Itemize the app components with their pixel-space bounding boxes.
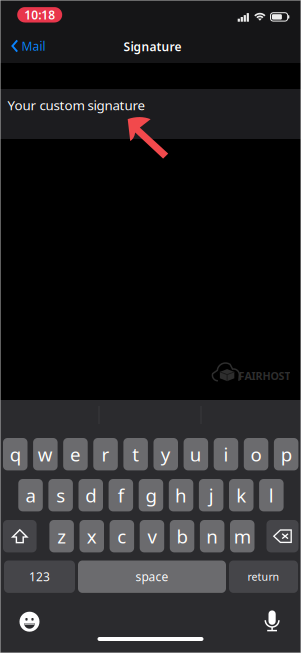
staticText: z [57,524,66,549]
staticText: q [10,442,21,467]
button[interactable]: t [123,438,148,470]
button[interactable]: q [3,438,27,470]
button[interactable]: e [63,438,88,470]
staticText: 10:18 [24,7,55,23]
button[interactable]: return [229,560,298,593]
staticText: t [132,442,139,467]
staticText: FAIRHOST [238,369,290,383]
button[interactable]: s [48,479,73,511]
button[interactable]: i [214,438,238,470]
staticText: h [175,483,187,508]
staticText: d [85,483,96,508]
staticText: c [117,524,126,549]
staticText: a [26,483,36,508]
button[interactable]: Mail [11,34,57,58]
staticText: Mail [21,38,45,54]
button[interactable]: w [33,438,58,470]
button[interactable]: u [184,438,208,470]
staticText: u [190,442,202,467]
button[interactable]: v [140,520,164,552]
staticText: e [70,442,81,467]
button[interactable]: 123 [4,560,75,593]
button[interactable]: r [93,438,118,470]
button[interactable]: d [78,479,103,511]
staticText: f [118,483,124,508]
button[interactable]: b [170,520,194,552]
button[interactable]: z [49,520,74,552]
staticText: j [209,483,214,508]
staticText: r [102,442,110,467]
staticText: k [236,483,246,508]
button[interactable]: Emoji keyboard [19,612,39,632]
staticText: v [147,524,156,549]
button[interactable]: x [79,520,104,552]
button[interactable]: h [169,479,193,511]
button[interactable]: n [200,520,224,552]
staticText: g [145,483,156,508]
staticText: i [223,442,228,467]
button[interactable]: Dictation [265,610,279,632]
button[interactable]: g [139,479,163,511]
staticText: m [234,524,251,549]
staticText: space [135,569,168,585]
staticText: w [38,442,53,467]
button[interactable]: a [18,479,43,511]
staticText: b [177,524,188,549]
staticText: n [206,524,218,549]
staticText: l [269,483,274,508]
button[interactable]: y [153,438,178,470]
staticText: Your custom signature [7,96,145,114]
staticText: 123 [29,569,50,585]
button[interactable]: c [110,520,134,552]
button[interactable]: m [230,520,254,552]
button[interactable]: Delete [266,520,298,552]
staticText: return [247,570,279,584]
button[interactable]: Shift [3,520,37,552]
staticText: s [56,483,65,508]
button[interactable]: f [109,479,133,511]
button[interactable]: k [229,479,253,511]
button[interactable]: l [259,479,284,511]
button[interactable]: space [78,560,226,593]
staticText: y [161,442,171,467]
staticText: Signature [123,38,181,54]
staticText: o [251,442,262,467]
button[interactable]: p [274,438,298,470]
staticText: p [281,442,292,467]
button[interactable]: o [244,438,268,470]
staticText: x [87,524,97,549]
button[interactable]: j [199,479,223,511]
